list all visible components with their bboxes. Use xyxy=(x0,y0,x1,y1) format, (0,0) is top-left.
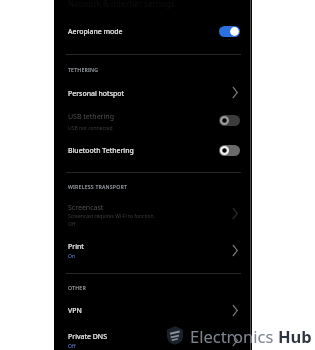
button[interactable] xyxy=(54,236,252,262)
staticText: Bluetooth Tethering xyxy=(68,146,134,156)
button[interactable] xyxy=(54,300,252,320)
button[interactable]: Switch on xyxy=(219,26,240,37)
button[interactable] xyxy=(54,22,252,40)
staticText: Personal hotspot xyxy=(68,89,125,99)
staticText: VPN xyxy=(68,306,82,316)
staticText: Aeroplane mode xyxy=(68,27,123,37)
staticText: Off xyxy=(68,221,76,228)
button[interactable]: Switch off xyxy=(219,115,240,126)
staticText: Screencast requires Wi-Fi to function. xyxy=(68,213,155,220)
button[interactable] xyxy=(54,82,252,102)
staticText: USB tethering xyxy=(68,112,114,122)
button[interactable] xyxy=(54,140,252,160)
staticText: Private DNS xyxy=(68,332,107,342)
staticText: USB not connected xyxy=(68,125,113,132)
button[interactable]: Switch off xyxy=(219,145,240,156)
button[interactable] xyxy=(54,198,252,232)
button[interactable] xyxy=(54,106,252,134)
staticText: Print xyxy=(68,242,84,252)
staticText: Screencast xyxy=(68,203,104,213)
staticText: Off xyxy=(68,343,76,350)
staticText: Network & internet settings xyxy=(68,0,175,9)
staticText: TETHERING xyxy=(68,66,99,73)
button[interactable] xyxy=(54,328,252,350)
staticText: WIRELESS TRANSPORT xyxy=(68,183,128,190)
staticText: Electronics xyxy=(190,325,278,345)
staticText: Hub xyxy=(278,325,312,345)
staticText: OTHER xyxy=(68,284,86,291)
staticText: On xyxy=(68,253,75,260)
